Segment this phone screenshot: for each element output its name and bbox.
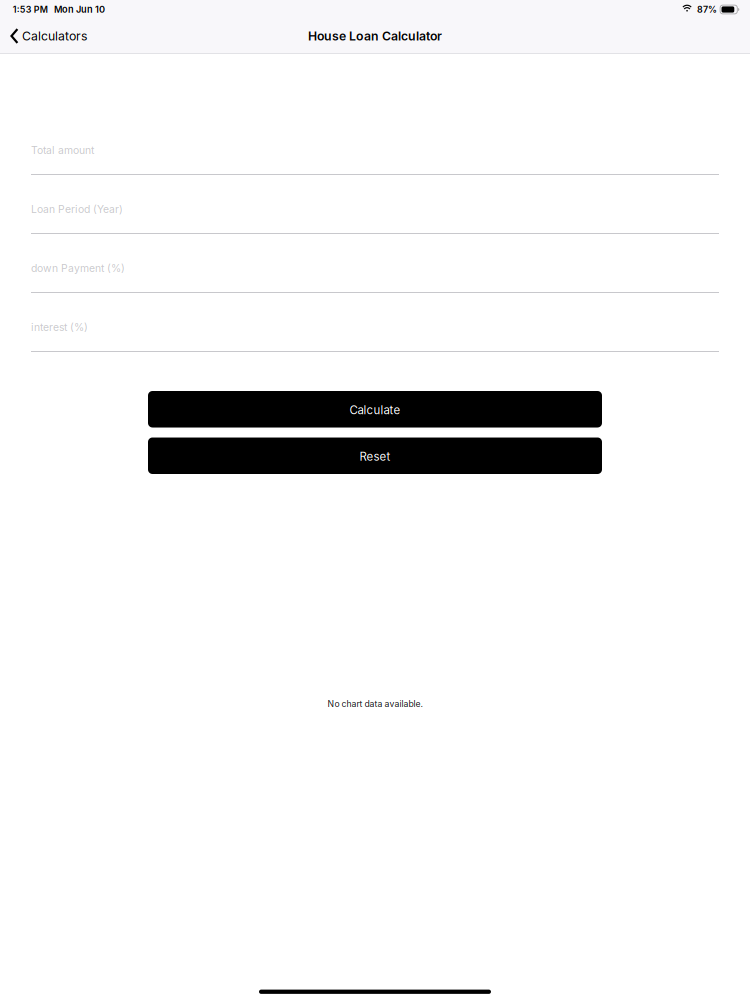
button[interactable]: down Payment (%) [31,262,719,293]
staticText: Total amount [31,144,94,157]
staticText: Calculate [349,403,400,417]
staticText: 1:53 PM [13,4,48,15]
staticText: interest (%) [31,321,88,334]
staticText: 87% [697,4,717,15]
staticText: No chart data available. [327,698,422,709]
button[interactable]: Total amount [31,144,719,175]
button[interactable]: Calculate [148,391,602,427]
button[interactable]: Calculators [0,19,95,53]
staticText: House Loan Calculator [308,29,442,43]
staticText: Mon Jun 10 [54,4,105,15]
staticText: Reset [359,450,390,463]
staticText: down Payment (%) [31,262,125,275]
button[interactable]: interest (%) [31,321,719,352]
button[interactable]: Loan Period (Year) [31,203,719,234]
staticText: Loan Period (Year) [31,203,123,216]
staticText: Calculators [22,29,87,43]
button[interactable]: Reset [148,437,602,474]
